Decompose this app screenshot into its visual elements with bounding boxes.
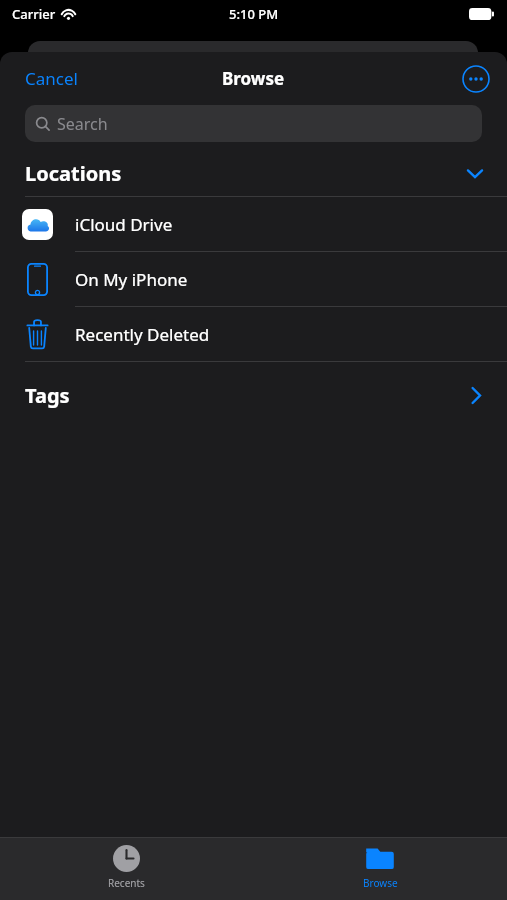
staticText: Cancel	[25, 67, 78, 90]
staticText: iCloud Drive	[75, 213, 173, 236]
staticText: Tags	[25, 382, 70, 409]
button[interactable]: Browse	[253, 838, 507, 900]
button[interactable]: Cancel	[0, 59, 103, 98]
button[interactable]: Locations	[0, 150, 507, 196]
staticText: Recently Deleted	[75, 323, 210, 346]
staticText: Carrier	[12, 5, 56, 23]
staticText: Recents	[108, 876, 145, 890]
staticText: Locations	[25, 160, 122, 187]
staticText: Search	[57, 113, 108, 135]
button[interactable]: Recents	[0, 838, 253, 900]
button[interactable]: On My iPhone	[0, 252, 507, 306]
staticText: 5:10 PM	[229, 5, 279, 23]
button[interactable]: iCloud Drive	[0, 197, 507, 251]
button[interactable]: Search	[25, 105, 482, 142]
button[interactable]: Recently Deleted	[0, 307, 507, 361]
button[interactable]: More options	[459, 62, 493, 96]
staticText: Browse	[363, 876, 398, 890]
button[interactable]: Tags	[0, 362, 507, 428]
staticText: On My iPhone	[75, 268, 188, 291]
staticText: Browse	[222, 67, 285, 90]
